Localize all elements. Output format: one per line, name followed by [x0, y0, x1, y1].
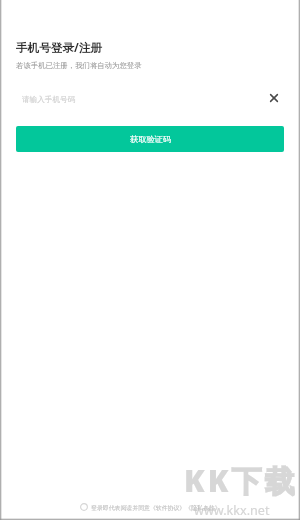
staticText: www.kkx.net — [194, 502, 270, 519]
staticText: 请输入手机号码 — [22, 95, 76, 105]
staticText: 登录即代表阅读并同意《软件协议》《隐私条款》 — [91, 504, 221, 511]
button[interactable]: 清除 — [266, 90, 282, 106]
button[interactable]: 请输入手机号码 — [0, 89, 270, 111]
staticText: 获取验证码 — [130, 134, 171, 144]
staticText: 手机号登录/注册 — [16, 40, 102, 56]
button[interactable]: 获取验证码 — [16, 126, 284, 152]
staticText: 若该手机已注册，我们将自动为您登录 — [16, 61, 142, 70]
button[interactable]: 登录即代表阅读并同意《软件协议》《隐私条款》 — [80, 503, 221, 511]
staticText: KK下载 — [184, 460, 299, 501]
